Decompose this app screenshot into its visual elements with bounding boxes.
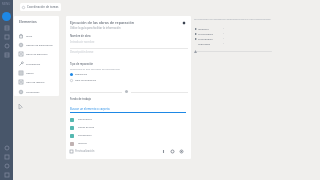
staticText: Cronograma — [198, 32, 213, 35]
staticText: Inicio — [26, 34, 33, 37]
staticText: Documentos — [78, 118, 92, 121]
staticText: Seleccione el tipo principal de interven… — [70, 67, 121, 70]
staticText: Memoria — [198, 27, 209, 30]
staticText: Libro de registro — [26, 80, 45, 83]
staticText: Tipo de reparación — [70, 62, 94, 66]
button[interactable]: Documentos — [66, 116, 191, 123]
staticText: Certificados — [26, 90, 40, 93]
button[interactable]: Seguridad — [195, 41, 225, 46]
staticText: | — [223, 42, 225, 45]
staticText: Descripción breve — [70, 50, 94, 54]
button[interactable]: Certificados — [14, 87, 59, 96]
button[interactable]: Inicio — [14, 31, 59, 40]
button[interactable]: Notifications — [2, 152, 11, 161]
staticText: Obra de ampliación — [75, 79, 97, 82]
staticText: | — [223, 32, 225, 35]
button[interactable]: Reports — [2, 41, 11, 50]
button[interactable]: Gastos — [14, 68, 59, 77]
button[interactable]: Presupuesto — [66, 132, 191, 139]
button[interactable]: Presupuesto — [195, 36, 225, 41]
button[interactable]: Settings — [179, 149, 184, 154]
staticText: Reparación — [75, 73, 88, 76]
button[interactable]: Informe — [66, 140, 191, 147]
button[interactable]: Dashboard — [2, 23, 11, 32]
button[interactable]: Copy — [170, 149, 175, 154]
staticText: Planos de obra — [78, 126, 95, 129]
button[interactable]: Memoria — [195, 26, 225, 31]
button[interactable]: Gestión de planificación — [14, 40, 59, 49]
staticText: Fondo de trabajo — [70, 97, 92, 101]
button[interactable]: Coordinación de tareas — [20, 3, 61, 11]
staticText: Informe — [78, 142, 87, 145]
staticText: Presupuesto — [78, 134, 92, 137]
staticText: Obras en ejecución — [26, 52, 48, 55]
button[interactable]: Account — [2, 12, 11, 21]
button[interactable]: Cronograma — [195, 31, 225, 36]
staticText: Introducir nombre — [70, 40, 95, 44]
button[interactable]: Reparación — [70, 72, 114, 77]
staticText: MENU — [2, 2, 11, 6]
staticText: Se muestran los elementos disponibles pa… — [194, 17, 271, 20]
button[interactable]: Projects — [2, 32, 11, 41]
staticText: Elementos — [19, 19, 37, 24]
button[interactable]: Planos de obra — [66, 124, 191, 131]
button[interactable]: Help — [2, 143, 11, 152]
staticText: Presupuesto — [198, 37, 213, 40]
staticText: Nombre de obra — [70, 34, 91, 38]
button[interactable]: Obra de ampliación — [70, 78, 114, 83]
button[interactable]: Logout — [2, 170, 11, 179]
staticText: Ejecución de las obras de reparación — [70, 20, 135, 25]
button[interactable]: Obras en ejecución — [14, 49, 59, 58]
staticText: Previsualización — [75, 149, 95, 153]
button[interactable]: Settings — [2, 161, 11, 170]
staticText: Gestión de planificación — [26, 43, 53, 46]
staticText: Seguridad — [198, 42, 211, 45]
button[interactable]: Close — [180, 19, 187, 26]
button[interactable]: Libro de registro — [14, 77, 59, 86]
staticText: Gastos — [26, 71, 34, 74]
button[interactable]: Presupuesto — [14, 59, 59, 68]
button[interactable]: Tasks — [2, 50, 11, 59]
staticText: | — [223, 27, 225, 30]
staticText: Coordinación de tareas — [27, 5, 59, 9]
staticText: Utilice la guía para facilitar la inform… — [70, 26, 121, 30]
staticText: Presupuesto — [26, 62, 41, 65]
button[interactable]: Attach — [161, 149, 166, 154]
staticText: Buscar un elemento o carpeta — [70, 107, 110, 111]
staticText: | — [223, 37, 225, 40]
